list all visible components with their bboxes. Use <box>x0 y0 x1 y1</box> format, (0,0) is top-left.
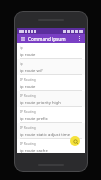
staticText: ip <box>20 46 23 50</box>
button[interactable]: Open navigation drawer <box>19 35 26 42</box>
staticText: ip route cache <box>20 148 48 153</box>
button[interactable]: ip <box>17 43 85 59</box>
staticText: ip route static adjust time <box>20 132 71 138</box>
staticText: ip route <box>20 52 36 58</box>
staticText: ip <box>20 62 23 66</box>
staticText: IP Routing <box>20 78 36 82</box>
staticText: ip route wi? <box>20 68 43 74</box>
staticText: IP Routing <box>20 126 36 130</box>
staticText: ip route priority high <box>20 100 61 106</box>
button[interactable]: IP Routing <box>17 139 85 153</box>
staticText: Command ipsum <box>28 36 76 42</box>
button[interactable]: IP Routing <box>17 107 85 123</box>
button[interactable]: IP Routing <box>17 91 85 107</box>
button[interactable]: ip <box>17 59 85 75</box>
staticText: IP Routing <box>20 110 36 114</box>
button[interactable]: Add command <box>70 136 80 146</box>
button[interactable]: IP Routing <box>17 75 85 91</box>
button[interactable]: IP Routing <box>17 123 85 139</box>
button[interactable]: More options <box>76 35 83 42</box>
staticText: IP Routing <box>20 94 36 98</box>
staticText: ip route prefix <box>20 116 48 122</box>
staticText: IP Routing <box>20 142 36 146</box>
staticText: ip route <box>20 84 36 90</box>
